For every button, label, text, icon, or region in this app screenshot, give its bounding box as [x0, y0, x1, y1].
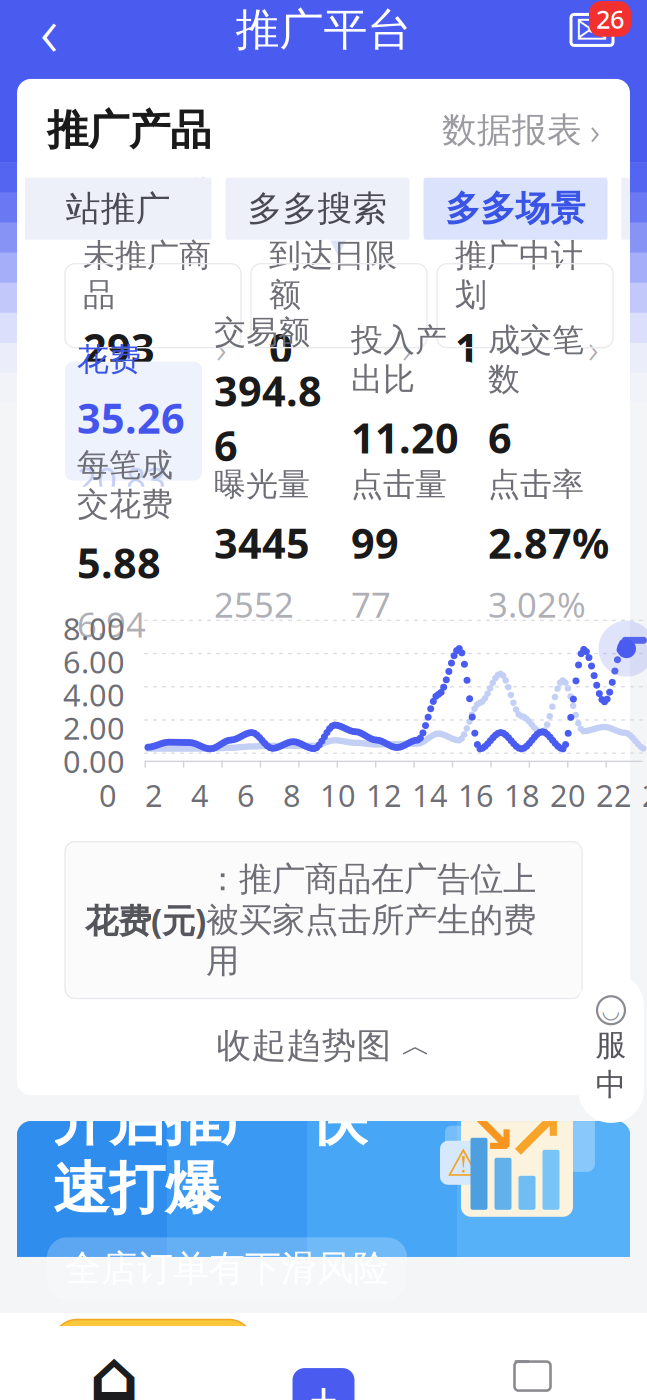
staticText: 99 — [351, 515, 399, 570]
staticText: 5.88 — [77, 535, 161, 590]
staticText: 到达日限额 — [269, 236, 397, 314]
button[interactable]: 点击率 — [476, 487, 613, 606]
staticText: ✉ — [575, 7, 609, 53]
staticText: › — [216, 321, 227, 374]
staticText: 8 — [283, 775, 301, 815]
staticText: 11.20 — [351, 410, 459, 465]
staticText: 9.94 — [351, 476, 420, 522]
staticText: 207.00 — [214, 484, 323, 530]
button[interactable]: 新建 — [219, 1353, 428, 1400]
staticText: ︿ — [401, 1028, 430, 1064]
staticText: 多多场景 — [445, 187, 585, 230]
staticText: 6 — [488, 410, 512, 465]
button[interactable]: 投入产出比 — [339, 362, 476, 481]
button[interactable]: 数据报表 — [442, 105, 600, 155]
staticText: 收起趋势图 — [216, 1024, 391, 1067]
staticText: 0 — [99, 775, 117, 815]
button[interactable]: ⌂ — [10, 1342, 219, 1400]
staticText: 服 — [595, 1026, 626, 1064]
staticText: 2.87% — [488, 515, 609, 570]
staticText: 每笔成交花费 — [77, 445, 173, 524]
staticText: 数据报表 — [442, 109, 582, 152]
staticText: ↗ — [505, 1094, 565, 1176]
staticText: 0 — [269, 320, 293, 375]
staticText: 花费 — [77, 340, 141, 379]
staticText: 1 — [455, 320, 479, 375]
button[interactable]: 消息 — [555, 0, 629, 61]
staticText: 未推广商品 — [83, 236, 211, 314]
staticText: 2552 — [214, 581, 294, 627]
staticText: 12 — [366, 775, 402, 815]
staticText: 6.00 — [63, 641, 125, 682]
button[interactable]: 成交笔数 — [476, 362, 613, 481]
staticText: 曝光量 — [214, 465, 310, 504]
staticText: 8.00 — [63, 608, 125, 649]
staticText: 2 — [145, 775, 163, 815]
staticText: 18 — [504, 775, 540, 815]
staticText: 推广中计划 — [455, 236, 583, 314]
button[interactable]: 收起趋势图 — [17, 1010, 630, 1081]
staticText: 荐 — [190, 153, 213, 181]
staticText: 22 — [596, 775, 632, 815]
button[interactable]: 服务中心 — [578, 973, 644, 1123]
staticText: 站推广 — [66, 187, 171, 230]
button[interactable]: 直播推广 — [621, 151, 647, 266]
button[interactable]: 推广管理 — [428, 1342, 637, 1400]
button[interactable]: 到达日限额 — [251, 264, 427, 348]
staticText: 26 — [596, 2, 624, 36]
button[interactable]: 曝光量 — [202, 487, 339, 606]
staticText: 交易额 — [214, 313, 310, 352]
button[interactable]: 多多场景 — [423, 172, 607, 245]
staticText: 点击量 — [351, 465, 447, 504]
staticText: ⌂ — [89, 1337, 139, 1400]
button[interactable]: 返回 — [18, 0, 80, 61]
staticText: 3445 — [214, 515, 310, 570]
staticText: 6.94 — [77, 601, 146, 647]
staticText: 立即推广 — [79, 1331, 227, 1376]
staticText: 10 — [320, 775, 356, 815]
staticText: 394.86 — [214, 363, 322, 473]
staticText: 24 — [642, 775, 647, 815]
staticText: 293 — [83, 320, 155, 375]
button[interactable]: 推广中计划 — [437, 264, 613, 348]
staticText: 14 — [412, 775, 448, 815]
staticText: 3 — [488, 476, 508, 522]
staticText: 6 — [237, 775, 255, 815]
staticText: 推广产品 — [47, 105, 211, 156]
staticText: › — [590, 105, 600, 155]
staticText: 20.83 — [77, 456, 166, 502]
staticText: 推广平台 — [235, 3, 411, 57]
staticText: + — [309, 1365, 338, 1400]
staticText: › — [588, 321, 599, 374]
staticText: 20 — [550, 775, 586, 815]
staticText: 77 — [351, 581, 391, 627]
staticText: 16 — [458, 775, 494, 815]
staticText: ：推广商品在广告位上被买家点击所产生的费用 — [206, 859, 536, 981]
staticText: ↘ — [465, 1097, 516, 1167]
staticText: 3.02% — [488, 581, 586, 627]
staticText: ◡ — [601, 998, 620, 1022]
staticText: › — [402, 321, 413, 374]
staticText: 花费(元) — [85, 898, 206, 942]
staticText: 投入产出比 — [351, 320, 447, 399]
staticText: 中 — [595, 1066, 626, 1104]
staticText: ⚠ — [446, 1142, 479, 1184]
staticText: 多多搜索 — [247, 187, 387, 230]
button[interactable]: 站推广 — [25, 151, 211, 266]
staticText: 开启推广 快速打爆 — [53, 1086, 367, 1223]
staticText: 35.26 — [77, 390, 185, 445]
button[interactable]: 未推广商品 — [65, 264, 241, 348]
button[interactable]: 立即推广 — [53, 1320, 253, 1387]
staticText: 2.00 — [63, 707, 125, 748]
button[interactable]: 每笔成交花费 — [65, 487, 202, 606]
staticText: 全店订单有下滑风险 — [65, 1246, 389, 1290]
button[interactable]: 花费 — [65, 362, 202, 481]
button[interactable]: 开启推广 快速打爆 — [17, 1121, 630, 1326]
button[interactable]: 点击量 — [339, 487, 476, 606]
staticText: 4.00 — [63, 674, 125, 715]
button[interactable]: 多多搜索 — [225, 172, 409, 245]
staticText: ‹ — [40, 0, 58, 76]
staticText: 0.00 — [63, 741, 125, 781]
button[interactable]: 交易额 — [202, 362, 339, 481]
staticText: ▾ — [330, 227, 346, 264]
